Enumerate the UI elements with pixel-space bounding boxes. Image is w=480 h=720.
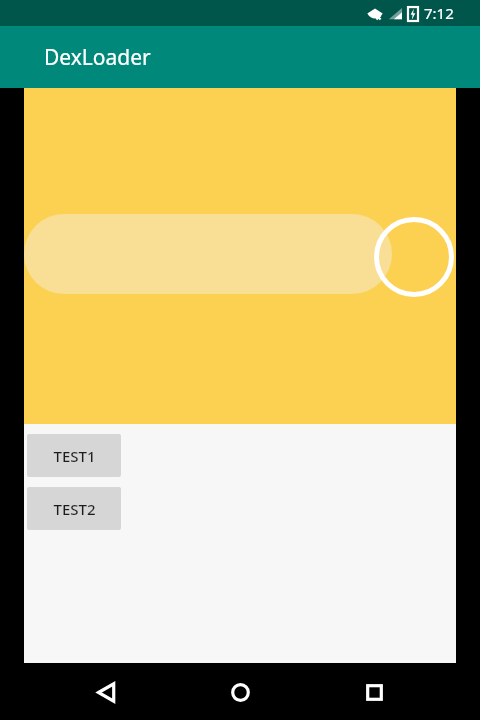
button[interactable]: Toggle [374, 217, 454, 297]
button[interactable] [24, 214, 392, 294]
staticText: DexLoader [44, 43, 151, 72]
button[interactable]: Recents [346, 664, 402, 720]
button[interactable]: TEST2 [27, 487, 121, 530]
button[interactable]: TEST1 [27, 434, 121, 477]
staticText: TEST2 [53, 499, 96, 519]
button[interactable]: Home [212, 664, 268, 720]
staticText: 7:12 [424, 3, 454, 23]
button[interactable]: Back [78, 664, 134, 720]
staticText: TEST1 [53, 446, 96, 466]
